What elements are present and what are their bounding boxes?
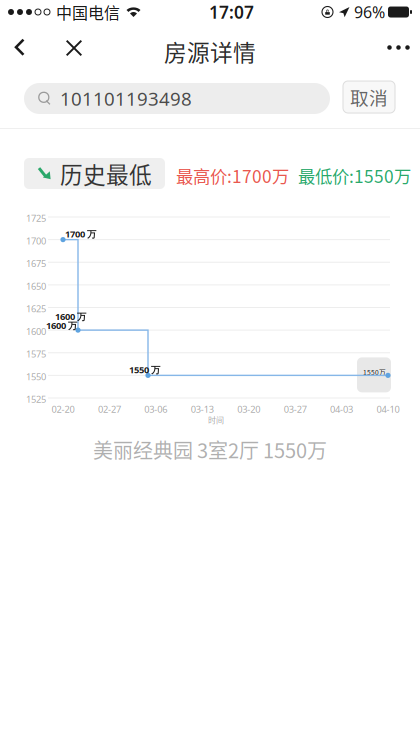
- staticText: 96%: [354, 1, 385, 23]
- staticText: 美丽经典园 3室2厅 1550万: [93, 435, 327, 464]
- staticText: 1650: [26, 280, 46, 292]
- staticText: 1700: [26, 235, 46, 247]
- staticText: 02-20: [51, 403, 74, 415]
- staticText: 1550: [26, 370, 46, 383]
- staticText: 1600 万: [55, 310, 86, 323]
- staticText: 历史最低: [60, 157, 152, 190]
- button[interactable]: 取消: [343, 81, 395, 113]
- staticText: 1700 万: [65, 228, 96, 240]
- staticText: 03-13: [191, 403, 214, 415]
- staticText: 17:07: [209, 0, 254, 23]
- staticText: 03-27: [284, 403, 307, 415]
- staticText: 04-03: [330, 403, 353, 415]
- staticText: 时间: [208, 414, 224, 426]
- staticText: 1575: [26, 348, 46, 360]
- staticText: 1600: [26, 325, 46, 337]
- staticText: 02-27: [98, 403, 121, 415]
- staticText: 03-06: [144, 403, 167, 415]
- staticText: 1725: [26, 212, 46, 224]
- staticText: 1550万: [363, 367, 386, 377]
- staticText: 1525: [26, 393, 46, 405]
- staticText: 04-10: [376, 403, 399, 415]
- staticText: 1625: [26, 302, 46, 315]
- staticText: 1550 万: [129, 363, 160, 376]
- button[interactable]: Back: [1, 28, 37, 66]
- staticText: 房源详情: [164, 35, 256, 68]
- button[interactable]: 101101193498: [24, 83, 330, 114]
- staticText: 101101193498: [60, 86, 192, 111]
- staticText: 中国电信: [56, 0, 120, 24]
- staticText: 1675: [26, 257, 46, 270]
- staticText: 最高价:1700万: [176, 163, 289, 188]
- button[interactable]: Close: [53, 28, 93, 66]
- button[interactable]: More: [376, 28, 420, 67]
- staticText: 取消: [350, 83, 388, 110]
- staticText: 最低价:1550万: [298, 163, 411, 188]
- staticText: 1600 万: [46, 319, 77, 332]
- staticText: 03-20: [237, 403, 260, 415]
